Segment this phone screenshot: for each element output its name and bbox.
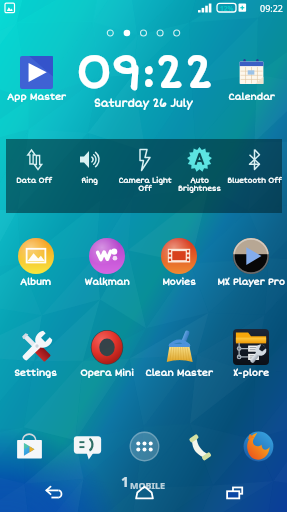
staticText: Settings: [14, 368, 57, 379]
staticText: X-plore: [233, 368, 269, 379]
staticText: Walkman: [84, 277, 130, 288]
staticText: Auto Brightness: [178, 176, 221, 194]
button[interactable]: Home: [127, 475, 161, 509]
staticText: MOBILE: [130, 479, 166, 491]
button[interactable]: Play Store: [0, 423, 58, 469]
button[interactable]: Phone: [173, 423, 230, 469]
staticText: Data Off: [16, 176, 52, 185]
staticText: Movies: [162, 277, 196, 288]
button[interactable]: Bluetooth Off: [227, 139, 282, 213]
staticText: Camera Light Off: [118, 176, 172, 194]
button[interactable]: Settings: [0, 329, 71, 379]
button[interactable]: Clean Master: [143, 329, 215, 379]
staticText: Ring: [81, 176, 98, 185]
button[interactable]: Ring: [62, 139, 117, 213]
button[interactable]: All apps: [116, 423, 173, 469]
staticText: 09:22: [260, 2, 284, 14]
button[interactable]: Album: [0, 238, 71, 288]
staticText: Bluetooth Off: [227, 176, 282, 185]
button[interactable]: Opera Mini: [71, 329, 143, 379]
staticText: App Master: [7, 92, 66, 103]
button[interactable]: Auto Brightness: [172, 139, 227, 213]
button[interactable]: Back: [36, 475, 70, 509]
button[interactable]: Walkman: [71, 238, 143, 288]
button[interactable]: X-plore: [215, 329, 287, 379]
button[interactable]: App Master: [6, 56, 66, 103]
button[interactable]: Movies: [143, 238, 215, 288]
staticText: 12%: [220, 4, 234, 13]
button[interactable]: Recents: [218, 475, 252, 509]
button[interactable]: MX Player Pro: [215, 238, 287, 288]
staticText: Clean Master: [145, 368, 213, 379]
staticText: Opera Mini: [80, 368, 134, 379]
button[interactable]: Data Off: [6, 139, 62, 213]
button[interactable]: Firefox: [230, 423, 287, 469]
staticText: Album: [20, 277, 51, 288]
staticText: Calendar: [228, 92, 275, 103]
button[interactable]: Camera Light Off: [117, 139, 172, 213]
staticText: Saturday 26 July: [94, 97, 193, 110]
button[interactable]: Messaging: [58, 423, 116, 469]
button[interactable]: Calendar: [221, 56, 281, 103]
staticText: 09:22: [75, 45, 213, 93]
staticText: MX Player Pro: [217, 277, 285, 288]
staticText: 1: [121, 472, 130, 491]
